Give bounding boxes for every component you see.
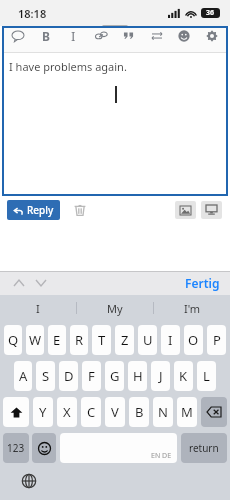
- staticText: I'm: [184, 301, 201, 316]
- staticText: My: [107, 301, 123, 316]
- staticText: B: [42, 28, 50, 44]
- button[interactable]: V: [105, 397, 125, 427]
- button[interactable]: L: [197, 361, 216, 391]
- button[interactable]: Settings: [202, 26, 222, 46]
- button[interactable]: Emoji: [32, 433, 56, 463]
- button[interactable]: C: [81, 397, 101, 427]
- button[interactable]: Backspace: [201, 397, 227, 427]
- button[interactable]: J: [151, 361, 170, 391]
- staticText: O: [188, 331, 199, 349]
- staticText: I: [168, 331, 173, 349]
- staticText: D: [64, 367, 74, 385]
- button[interactable]: Fertig: [175, 272, 230, 294]
- staticText: H: [133, 367, 143, 385]
- button[interactable]: Previous field: [8, 272, 30, 294]
- button[interactable]: M: [177, 397, 197, 427]
- staticText: 123: [7, 441, 25, 455]
- button[interactable]: Reply: [7, 200, 60, 220]
- staticText: Reply: [27, 203, 54, 217]
- staticText: R: [75, 331, 84, 349]
- button[interactable]: S: [36, 361, 55, 391]
- button[interactable]: Emoji: [174, 26, 194, 46]
- button[interactable]: Link: [91, 26, 111, 46]
- button[interactable]: A: [14, 361, 32, 391]
- button[interactable]: return: [181, 433, 227, 463]
- staticText: Fertig: [185, 275, 220, 291]
- button[interactable]: F: [82, 361, 101, 391]
- button[interactable]: My: [77, 295, 153, 321]
- button[interactable]: H: [128, 361, 147, 391]
- button[interactable]: E: [48, 325, 66, 355]
- button[interactable]: Transfer: [147, 26, 167, 46]
- staticText: Q: [8, 331, 19, 349]
- button[interactable]: Quote: [119, 26, 139, 46]
- button[interactable]: Preview: [201, 201, 222, 219]
- staticText: T: [98, 331, 106, 349]
- button[interactable]: Q: [4, 325, 22, 355]
- button[interactable]: 123: [3, 433, 29, 463]
- button[interactable]: T: [92, 325, 111, 355]
- staticText: F: [88, 367, 95, 385]
- button[interactable]: X: [57, 397, 77, 427]
- button[interactable]: Comment: [8, 26, 28, 46]
- staticText: I have problems again.: [9, 59, 127, 74]
- staticText: G: [110, 367, 120, 385]
- staticText: J: [159, 367, 163, 385]
- button[interactable]: Z: [115, 325, 134, 355]
- button[interactable]: B: [129, 397, 149, 427]
- staticText: return: [189, 441, 219, 455]
- button[interactable]: Y: [33, 397, 53, 427]
- button[interactable]: I: [161, 325, 180, 355]
- button[interactable]: U: [138, 325, 157, 355]
- staticText: E: [53, 331, 61, 349]
- button[interactable]: W: [26, 325, 44, 355]
- button[interactable]: P: [207, 325, 226, 355]
- button[interactable]: R: [70, 325, 88, 355]
- staticText: C: [87, 403, 96, 421]
- button[interactable]: Delete: [70, 200, 90, 220]
- staticText: N: [158, 403, 168, 421]
- staticText: W: [29, 331, 42, 349]
- button[interactable]: N: [153, 397, 173, 427]
- staticText: EN DE: [151, 451, 172, 461]
- button[interactable]: Insert image: [175, 201, 196, 219]
- button[interactable]: Shift: [3, 397, 29, 427]
- button[interactable]: I: [0, 295, 76, 321]
- staticText: 18:18: [18, 6, 47, 21]
- button[interactable]: G: [105, 361, 124, 391]
- staticText: L: [203, 367, 210, 385]
- staticText: Y: [39, 403, 47, 421]
- button[interactable]: B: [36, 26, 56, 46]
- staticText: Z: [121, 331, 129, 349]
- staticText: A: [19, 367, 28, 385]
- staticText: 36: [206, 8, 215, 18]
- button[interactable]: K: [174, 361, 193, 391]
- staticText: B: [135, 403, 144, 421]
- button[interactable]: Space: [60, 433, 177, 463]
- staticText: M: [181, 403, 193, 421]
- button[interactable]: I: [63, 26, 83, 46]
- button[interactable]: I'm: [154, 295, 230, 321]
- staticText: U: [143, 331, 153, 349]
- staticText: K: [179, 367, 188, 385]
- staticText: I: [71, 28, 76, 44]
- staticText: X: [63, 403, 71, 421]
- button[interactable]: Change keyboard: [18, 470, 40, 492]
- staticText: S: [42, 367, 50, 385]
- staticText: V: [111, 403, 119, 421]
- button[interactable]: Next field: [30, 272, 52, 294]
- button[interactable]: D: [59, 361, 78, 391]
- staticText: I: [36, 301, 40, 316]
- button[interactable]: O: [184, 325, 203, 355]
- staticText: P: [213, 331, 221, 349]
